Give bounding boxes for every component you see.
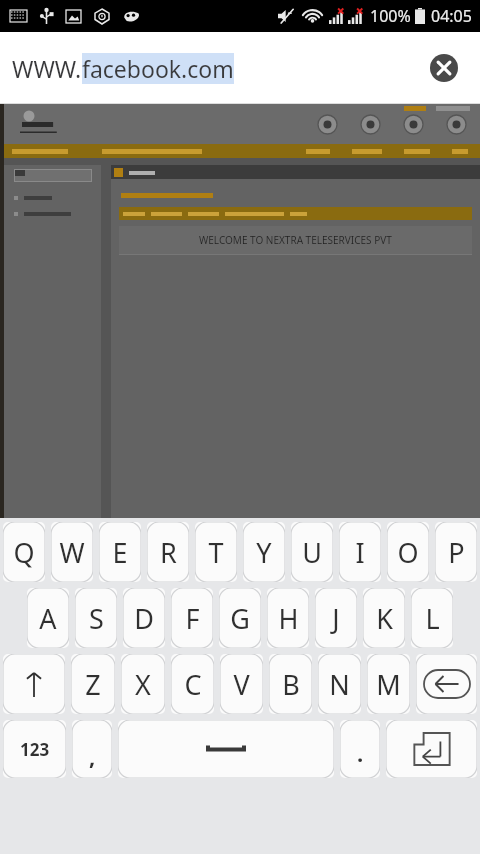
button[interactable]: A [27, 588, 69, 648]
staticText: F [185, 600, 200, 637]
staticText: X [135, 666, 151, 703]
button[interactable]: . [340, 720, 380, 778]
staticText: E [112, 534, 128, 571]
button[interactable]: V [220, 654, 263, 714]
staticText: . [357, 738, 364, 768]
button[interactable]: T [195, 522, 237, 582]
button[interactable]: Space [118, 720, 334, 778]
button[interactable]: O [387, 522, 429, 582]
button[interactable]: G [219, 588, 261, 648]
staticText: I [355, 534, 365, 571]
staticText: V [233, 666, 250, 703]
staticText: R [160, 534, 177, 571]
staticText: A [39, 600, 57, 637]
staticText: facebook.com [82, 53, 234, 84]
staticText: Q [13, 534, 35, 571]
staticText: H [278, 600, 299, 637]
button[interactable]: S [75, 588, 117, 648]
button[interactable]: 123 [3, 720, 66, 778]
button[interactable]: I [339, 522, 381, 582]
staticText: L [425, 600, 440, 637]
staticText: S [89, 600, 104, 637]
staticText: P [448, 534, 465, 571]
button[interactable]: Clear text [424, 48, 464, 88]
button[interactable]: B [269, 654, 312, 714]
button[interactable]: , [72, 720, 112, 778]
staticText: , [89, 741, 96, 771]
button[interactable]: K [363, 588, 405, 648]
staticText: 100% [370, 5, 411, 27]
button[interactable]: D [123, 588, 165, 648]
button[interactable]: R [147, 522, 189, 582]
staticText: U [302, 534, 322, 571]
button[interactable]: F [171, 588, 213, 648]
staticText: O [397, 534, 419, 571]
button[interactable]: Backspace [416, 654, 477, 714]
button[interactable]: W [51, 522, 93, 582]
staticText: G [230, 600, 250, 637]
button[interactable]: Q [3, 522, 45, 582]
button[interactable]: N [318, 654, 361, 714]
staticText: WWW. [12, 53, 82, 84]
button[interactable]: X [121, 654, 165, 714]
staticText: 123 [20, 738, 50, 761]
staticText: C [184, 666, 202, 703]
button[interactable]: H [267, 588, 309, 648]
button[interactable]: J [315, 588, 357, 648]
staticText: T [208, 534, 224, 571]
staticText: N [329, 666, 350, 703]
button[interactable]: Y [243, 522, 285, 582]
button[interactable]: E [99, 522, 141, 582]
button[interactable]: M [367, 654, 410, 714]
staticText: W [59, 534, 85, 571]
staticText: D [134, 600, 154, 637]
button[interactable]: P [435, 522, 477, 582]
button[interactable]: Z [71, 654, 115, 714]
staticText: Y [256, 534, 272, 571]
button[interactable]: Enter [386, 720, 477, 778]
staticText: M [376, 666, 401, 703]
staticText: K [376, 600, 393, 637]
button[interactable]: U [291, 522, 333, 582]
staticText: B [282, 666, 300, 703]
staticText: WELCOME TO NEXTRA TELESERVICES PVT [199, 233, 392, 247]
button[interactable]: Shift [3, 654, 65, 714]
button[interactable]: C [171, 654, 214, 714]
button[interactable]: L [411, 588, 453, 648]
staticText: Z [85, 666, 101, 703]
staticText: J [332, 600, 340, 637]
staticText: 04:05 [431, 5, 472, 27]
